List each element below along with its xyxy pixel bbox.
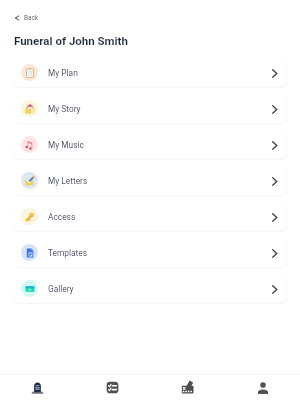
staticText: Back — [24, 14, 39, 22]
staticText: Templates — [48, 248, 88, 258]
staticText: My Letters — [48, 176, 88, 186]
staticText: Gallery — [48, 284, 74, 294]
button[interactable]: Payments — [150, 375, 225, 400]
button[interactable]: My Music — [14, 130, 286, 159]
button[interactable]: My Letters — [14, 166, 286, 195]
button[interactable]: Tasks — [75, 375, 150, 400]
button[interactable]: Back — [14, 11, 39, 24]
button[interactable]: My Story — [14, 94, 286, 123]
staticText: My Story — [48, 104, 81, 114]
staticText: Access — [48, 212, 76, 222]
button[interactable]: Memorial — [0, 375, 75, 400]
staticText: My Plan — [48, 68, 78, 78]
staticText: My Music — [48, 140, 84, 150]
button[interactable]: Gallery — [14, 274, 286, 303]
button[interactable]: Templates — [14, 238, 286, 267]
staticText: Funeral of John Smith — [14, 34, 128, 47]
button[interactable]: Access — [14, 202, 286, 231]
button[interactable]: My Plan — [14, 58, 286, 87]
button[interactable]: Profile — [225, 375, 300, 400]
